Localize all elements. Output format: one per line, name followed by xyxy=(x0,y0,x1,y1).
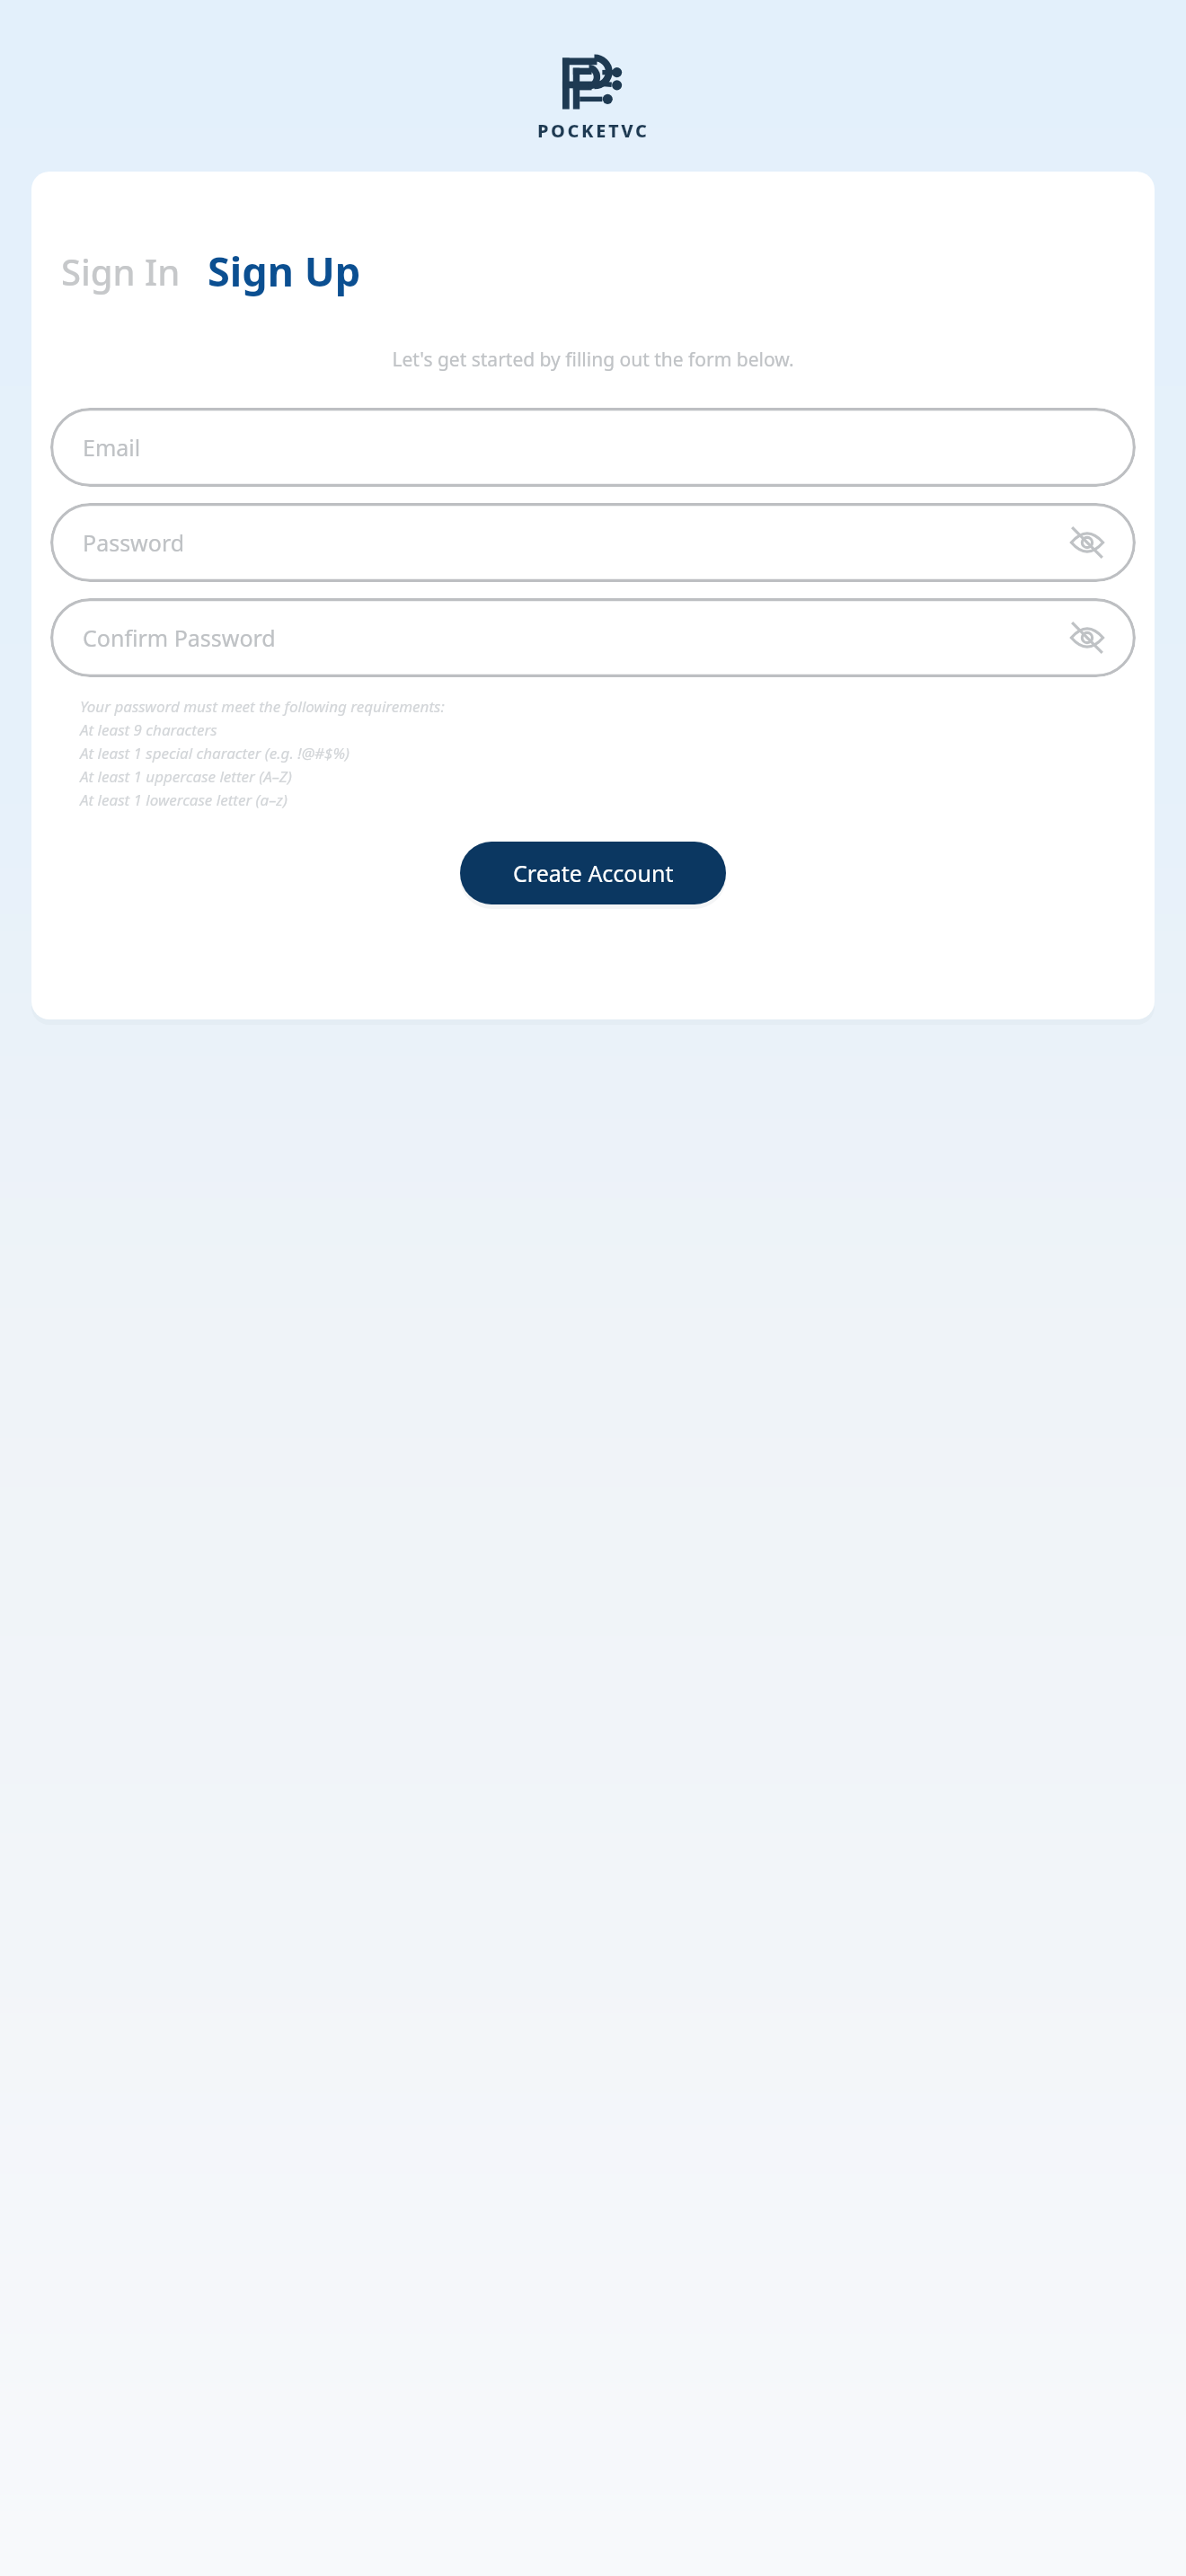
staticText: Sign In xyxy=(61,247,181,296)
staticText: At least 9 characters xyxy=(80,719,217,740)
other: PocketVC logo xyxy=(560,56,626,111)
button[interactable]: Show password xyxy=(1066,616,1109,659)
button[interactable]: Sign Up xyxy=(208,243,361,298)
staticText: At least 1 lowercase letter (a–z) xyxy=(80,790,288,810)
staticText: Your password must meet the following re… xyxy=(80,696,445,717)
button[interactable]: Sign In xyxy=(61,247,181,296)
staticText: Confirm Password xyxy=(83,622,276,653)
button[interactable]: Create Account xyxy=(460,842,726,904)
staticText: At least 1 uppercase letter (A–Z) xyxy=(80,766,292,787)
staticText: POCKETVC xyxy=(537,119,650,143)
staticText: Let's get started by filling out the for… xyxy=(392,347,794,373)
staticText: Create Account xyxy=(513,858,674,888)
staticText: Password xyxy=(83,527,185,558)
button[interactable]: Password xyxy=(50,503,1136,582)
button[interactable]: Email xyxy=(50,408,1136,487)
staticText: Email xyxy=(83,432,141,463)
staticText: At least 1 special character (e.g. !@#$%… xyxy=(80,743,350,763)
button[interactable]: Show password xyxy=(1066,521,1109,564)
staticText: Sign Up xyxy=(208,243,361,298)
button[interactable]: Confirm Password xyxy=(50,598,1136,677)
